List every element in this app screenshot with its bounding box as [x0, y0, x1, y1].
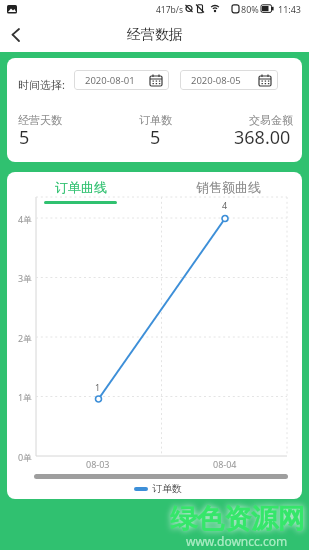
staticText: 绿色资源网: [170, 502, 305, 536]
staticText: www.downcc.com: [186, 533, 288, 549]
staticText: 3单: [18, 272, 33, 284]
staticText: 订单数: [152, 482, 182, 495]
button[interactable]: 销售额曲线: [154, 172, 302, 202]
staticText: 经营天数: [18, 113, 62, 127]
staticText: 80%: [241, 3, 259, 15]
staticText: 交易金额: [249, 113, 293, 126]
button[interactable]: [0, 17, 30, 52]
staticText: 5: [150, 125, 161, 145]
staticText: 订单曲线: [55, 179, 107, 195]
staticText: 1: [95, 381, 101, 393]
staticText: 0单: [18, 451, 33, 463]
staticText: 5: [19, 125, 30, 150]
staticText: 08-03: [86, 458, 110, 470]
staticText: 368.00: [234, 125, 291, 145]
staticText: 2020-08-01: [85, 74, 135, 87]
button[interactable]: 订单曲线: [7, 172, 154, 202]
staticText: 2020-08-05: [191, 74, 241, 87]
staticText: 08-04: [213, 458, 237, 470]
staticText: 2单: [18, 332, 33, 344]
staticText: 1单: [18, 391, 33, 403]
staticText: 订单数: [139, 113, 172, 126]
staticText: 经营数据: [127, 26, 183, 44]
staticText: 417b/s: [156, 4, 184, 16]
button[interactable]: 2020-08-01: [74, 70, 169, 90]
button[interactable]: 2020-08-05: [180, 70, 278, 90]
staticText: 4单: [18, 213, 33, 225]
button[interactable]: [134, 487, 148, 491]
staticText: 销售额曲线: [196, 179, 261, 195]
staticText: 11:43: [278, 3, 302, 15]
staticText: 时间选择:: [18, 77, 65, 92]
staticText: 4: [222, 199, 228, 211]
